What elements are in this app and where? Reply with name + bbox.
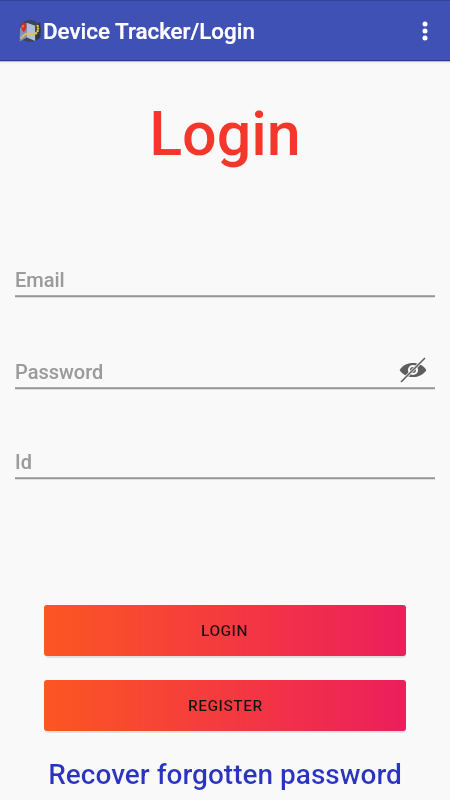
button[interactable]: More options xyxy=(404,10,446,52)
button[interactable]: Email xyxy=(0,251,450,311)
staticText: Device Tracker/Login xyxy=(43,18,255,44)
button[interactable]: Id xyxy=(0,433,450,493)
button[interactable]: Show password xyxy=(398,355,428,385)
button[interactable]: LOGIN xyxy=(44,605,406,656)
staticText: Recover forgotten password xyxy=(48,758,402,791)
staticText: REGISTER xyxy=(188,697,263,715)
staticText: Email xyxy=(15,268,65,291)
staticText: LOGIN xyxy=(201,622,249,640)
button[interactable]: REGISTER xyxy=(44,680,406,731)
button[interactable]: Password xyxy=(0,343,450,403)
button[interactable]: Recover forgotten password xyxy=(0,755,450,800)
staticText: Id xyxy=(15,450,32,473)
staticText: Password xyxy=(15,360,104,383)
staticText: Login xyxy=(0,98,450,169)
